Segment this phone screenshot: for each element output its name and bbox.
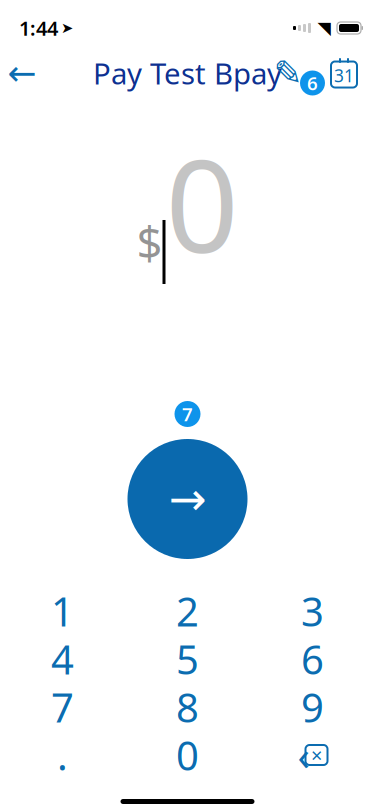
staticText: 8 [176,680,199,733]
button[interactable]: Continue [127,439,247,559]
button[interactable]: 8 [125,683,250,731]
button[interactable]: 3 [250,587,375,635]
button[interactable]: Edit [270,51,306,95]
staticText: . [57,728,68,781]
staticText: 31 [334,64,354,87]
button[interactable]: 2 [125,587,250,635]
button[interactable]: Schedule [327,51,361,95]
button[interactable]: Back [0,51,44,95]
staticText: ✎ [273,53,302,93]
staticText: 5 [176,632,199,685]
button[interactable]: 0 [125,731,250,779]
staticText: × [311,742,322,768]
staticText: 0 [165,118,238,288]
button[interactable]: 7 [0,683,125,731]
button[interactable]: 5 [125,635,250,683]
staticText: 6 [307,71,318,95]
button[interactable]: 1 [0,587,125,635]
button[interactable]: 4 [0,635,125,683]
button[interactable]: 9 [250,683,375,731]
staticText: 7 [51,680,74,733]
staticText: ◥ [317,18,330,38]
staticText: 4 [51,632,74,685]
staticText: 3 [301,584,324,637]
staticText: Pay Test Bpay [93,53,282,92]
staticText: 2 [176,584,199,637]
button[interactable]: 6 [250,635,375,683]
staticText: ← [7,53,36,93]
staticText: 9 [301,680,324,733]
staticText: 7 [182,402,193,426]
staticText: 1:44 [19,15,58,41]
button[interactable]: Delete [250,731,375,779]
staticText: 6 [301,632,324,685]
staticText: ‹ [297,728,309,781]
staticText: 0 [176,728,199,781]
staticText: → [168,473,206,525]
staticText: $ [136,212,162,272]
button[interactable]: . [0,731,125,779]
staticText: 1 [51,584,74,637]
staticText: ➤ [61,20,73,36]
